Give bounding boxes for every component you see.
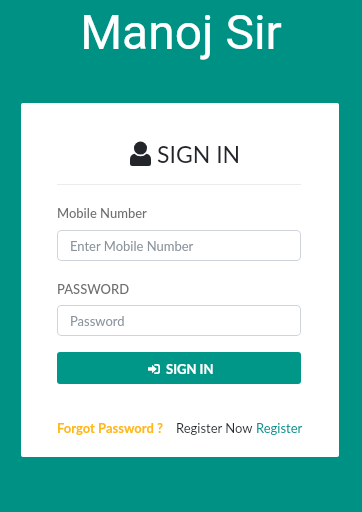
staticText: Password [70,313,125,329]
button[interactable]: Enter Mobile Number [57,230,301,261]
staticText: SIGN IN [166,361,214,377]
button[interactable]: Register [256,420,303,436]
button[interactable]: Password [57,305,301,336]
staticText: SIGN IN [157,140,241,168]
staticText: Manoj Sir [0,4,362,60]
button[interactable]: Forgot Password ? [57,420,163,436]
staticText: PASSWORD [57,281,130,297]
button[interactable]: SIGN IN [57,352,301,384]
staticText: Register Now [176,420,256,436]
staticText: Mobile Number [57,205,147,221]
staticText: Enter Mobile Number [70,238,194,254]
